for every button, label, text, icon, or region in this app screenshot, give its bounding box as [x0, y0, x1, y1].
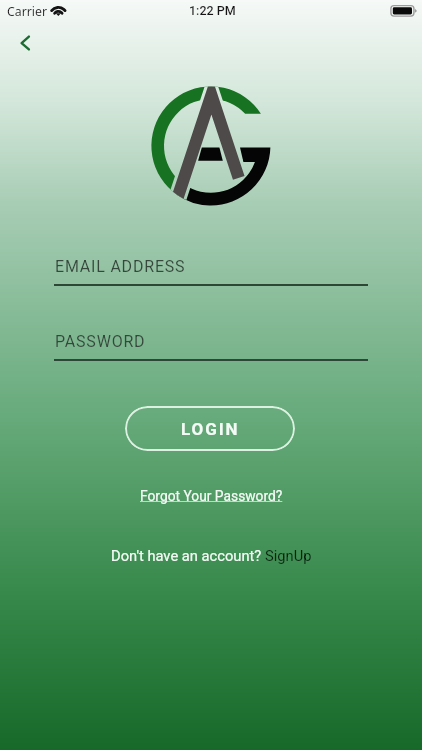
staticText: SignUp	[265, 547, 312, 564]
button[interactable]: Forgot Your Password?	[140, 488, 283, 504]
button[interactable]: Back	[8, 29, 36, 57]
button[interactable]: SignUp	[265, 547, 312, 564]
button[interactable]: LOGIN	[125, 406, 295, 451]
button[interactable]: EMAIL ADDRESS	[53, 252, 367, 283]
button[interactable]: PASSWORD	[53, 327, 367, 358]
staticText: 1:22 PM	[189, 3, 236, 18]
staticText: PASSWORD	[55, 332, 146, 351]
staticText: Carrier	[7, 3, 48, 20]
staticText: Don't have an account?	[111, 547, 265, 564]
staticText: EMAIL ADDRESS	[55, 257, 186, 276]
staticText: LOGIN	[181, 419, 240, 439]
staticText: Forgot Your Password?	[140, 488, 283, 504]
